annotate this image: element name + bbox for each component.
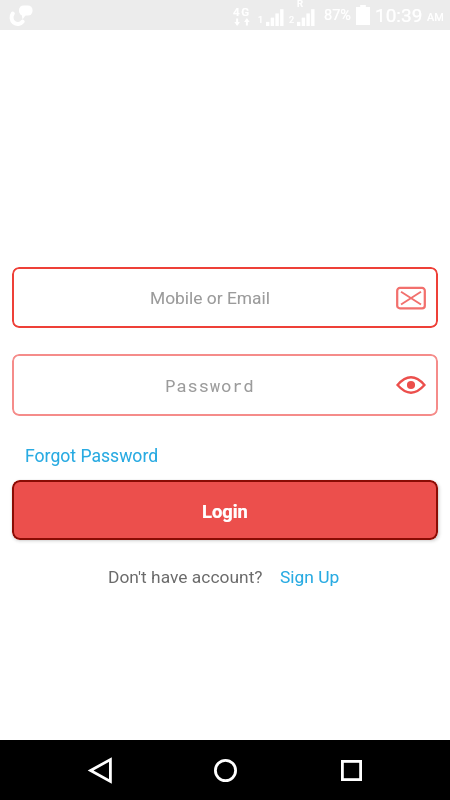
staticText: Don't have account? xyxy=(108,567,263,587)
button[interactable]: Forgot Password xyxy=(22,446,162,467)
button[interactable]: Back xyxy=(74,744,126,796)
staticText: 4G xyxy=(233,5,251,18)
staticText: 10:39 xyxy=(375,4,423,26)
staticText: Sign Up xyxy=(280,567,340,587)
button[interactable]: Sign Up xyxy=(278,567,342,587)
staticText: R xyxy=(297,0,303,9)
staticText: Login xyxy=(202,501,248,522)
button[interactable]: Login xyxy=(12,480,438,540)
button[interactable]: Show password xyxy=(396,370,426,400)
button[interactable]: Home xyxy=(199,744,251,796)
staticText: 87% xyxy=(324,7,351,24)
staticText: 2 xyxy=(289,15,295,26)
staticText: Forgot Password xyxy=(25,446,159,467)
button[interactable]: Password xyxy=(12,354,438,416)
staticText: 1 xyxy=(258,15,264,26)
button[interactable]: Mobile or Email xyxy=(12,267,438,328)
staticText: Mobile or Email xyxy=(150,288,271,308)
staticText: Password xyxy=(165,374,255,397)
staticText: AM xyxy=(427,11,444,24)
button[interactable]: Recent apps xyxy=(325,744,377,796)
